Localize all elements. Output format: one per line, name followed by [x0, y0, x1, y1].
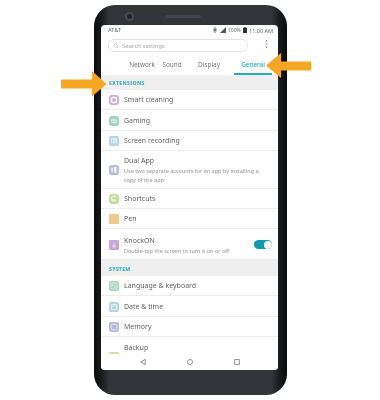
staticText: SYSTEM	[109, 265, 131, 272]
button[interactable]: General	[234, 52, 272, 75]
staticText: AT&T	[108, 26, 122, 34]
button[interactable]: Back	[131, 354, 155, 370]
staticText: Sound	[162, 60, 182, 69]
staticText: Double-tap the screen to turn it on or o…	[124, 247, 230, 254]
staticText: Network	[129, 60, 155, 69]
button[interactable]: Search settings	[108, 39, 248, 52]
button[interactable]: Home	[178, 354, 202, 370]
button[interactable]: Pen	[101, 209, 278, 229]
staticText: Smart cleaning	[124, 95, 174, 105]
button[interactable]: Sound	[156, 52, 188, 75]
staticText: KnockON	[124, 236, 155, 246]
staticText: 100%	[228, 27, 241, 34]
button[interactable]: More options	[259, 35, 273, 52]
staticText: Display	[198, 60, 220, 69]
button[interactable]: Recent apps	[225, 354, 249, 370]
staticText: Shortcuts	[124, 194, 156, 204]
button[interactable]: Screen recording	[101, 131, 278, 151]
staticText: 11:00 AM	[249, 27, 273, 34]
button[interactable]: Memory	[101, 317, 278, 337]
staticText: Search settings	[122, 42, 165, 50]
button[interactable]: Shortcuts	[101, 189, 278, 209]
staticText: Use two separate accounts for an app by …	[124, 167, 259, 184]
staticText: Gaming	[124, 116, 151, 126]
button[interactable]: Gaming	[101, 110, 278, 131]
button[interactable]: Network	[124, 52, 160, 75]
staticText: General	[241, 60, 265, 69]
button[interactable]: Display	[192, 52, 226, 75]
button[interactable]: KnockON	[101, 229, 278, 260]
button[interactable]: Date & time	[101, 296, 278, 317]
staticText: Memory	[124, 322, 152, 332]
staticText: Language & keyboard	[124, 281, 197, 291]
staticText: Pen	[124, 214, 137, 224]
button[interactable]: Language & keyboard	[101, 276, 278, 296]
button[interactable]: Backup	[101, 337, 278, 358]
button[interactable]: KnockON toggle	[254, 240, 272, 249]
staticText: Screen recording	[124, 136, 180, 146]
staticText: Date & time	[124, 302, 164, 312]
staticText: Dual App	[124, 156, 155, 166]
button[interactable]: Dual App	[101, 151, 278, 189]
staticText: Backup	[124, 343, 149, 353]
staticText: EXTENSIONS	[109, 79, 145, 86]
button[interactable]: Smart cleaning	[101, 90, 278, 110]
